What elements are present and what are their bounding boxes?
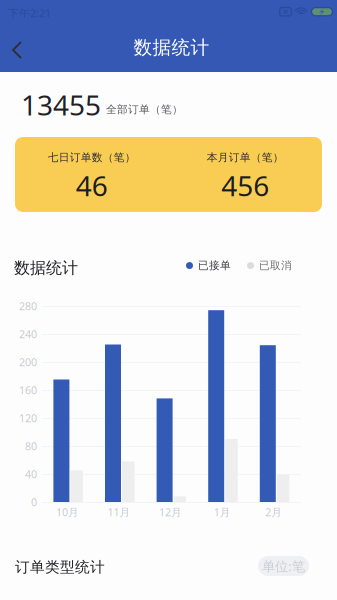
staticText: 456 xyxy=(221,167,269,204)
staticText: 全部订单（笔） xyxy=(106,103,183,116)
staticText: 本月订单（笔） xyxy=(207,151,284,164)
staticText: 12月 xyxy=(159,505,182,519)
staticText: 46 xyxy=(76,167,108,204)
staticText: 240 xyxy=(19,327,37,341)
button[interactable]: 单位:笔 xyxy=(258,556,309,576)
staticText: 160 xyxy=(19,383,37,397)
staticText: 七日订单数（笔） xyxy=(48,151,136,164)
staticText: 120 xyxy=(19,411,37,425)
staticText: 280 xyxy=(19,299,37,313)
staticText: 200 xyxy=(19,355,37,369)
staticText: 数据统计 xyxy=(133,36,209,59)
staticText: 2月 xyxy=(265,505,282,519)
staticText: 11月 xyxy=(107,505,130,519)
staticText: 已接单 xyxy=(198,259,231,272)
staticText: 80 xyxy=(25,439,37,453)
staticText: 订单类型统计 xyxy=(15,558,105,576)
staticText: 13455 xyxy=(21,86,101,123)
staticText: 40 xyxy=(25,467,37,481)
staticText: 0 xyxy=(31,495,37,509)
staticText: 单位:笔 xyxy=(262,557,305,575)
staticText: 已取消 xyxy=(259,259,292,272)
staticText: 数据统计 xyxy=(14,258,78,278)
staticText: 10月 xyxy=(56,505,79,519)
staticText: 下午2:21 xyxy=(8,6,51,20)
button[interactable]: 返回 xyxy=(4,31,46,69)
staticText: 1月 xyxy=(214,505,231,519)
